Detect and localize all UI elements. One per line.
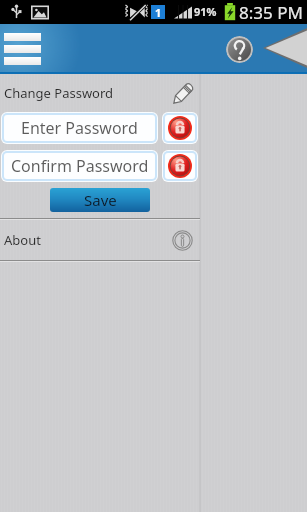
button[interactable]: Help [226,36,253,63]
button[interactable]: Lock [165,115,195,141]
staticText: Confirm Password [11,155,149,177]
staticText: Change Password [4,84,114,102]
staticText: Save [84,190,117,210]
staticText: 8:35 PM [239,1,303,24]
button[interactable]: About [0,220,200,260]
staticText: 91% [194,4,217,19]
button[interactable]: Enter Password [4,115,155,141]
staticText: 1 [155,5,162,19]
button[interactable]: Save [50,188,150,212]
button[interactable]: Menu [4,33,41,65]
staticText: About [4,231,41,249]
button[interactable]: Edit [173,83,194,104]
button[interactable]: Change Password [0,74,200,112]
button[interactable]: About [172,230,193,251]
button[interactable]: Lock [165,153,195,179]
staticText: Enter Password [21,117,138,139]
button[interactable]: Confirm Password [4,153,155,179]
